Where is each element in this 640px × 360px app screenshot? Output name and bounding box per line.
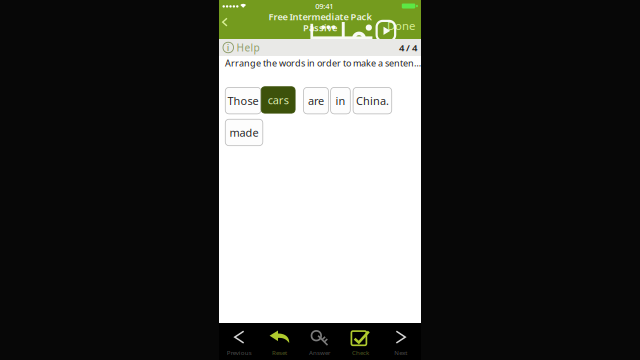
staticText: made [230, 125, 259, 140]
button[interactable]: in [331, 87, 350, 114]
staticText: Check [352, 349, 369, 357]
button[interactable]: are [303, 87, 328, 114]
staticText: Reset [272, 349, 287, 357]
button[interactable]: cars [261, 87, 295, 113]
staticText: are [308, 93, 324, 108]
staticText: cars [268, 93, 289, 107]
button[interactable]: Check [340, 323, 381, 360]
staticText: 4 / 4 [399, 41, 417, 54]
staticText: i [227, 41, 230, 54]
button[interactable]: China. [353, 87, 392, 114]
staticText: Previous [227, 349, 252, 357]
staticText: Arrange the words in order to make a sen… [225, 57, 421, 69]
button[interactable]: i [223, 39, 259, 56]
staticText: Free Intermediate Pack [268, 10, 371, 23]
button[interactable]: Reset [259, 323, 300, 360]
staticText: in [335, 93, 345, 108]
button[interactable]: Answer [300, 323, 340, 360]
button[interactable]: Next [381, 323, 421, 360]
staticText: Answer [309, 349, 331, 357]
staticText: China. [356, 93, 389, 108]
staticText: Next [394, 349, 407, 357]
button[interactable]: made [225, 119, 263, 146]
button[interactable]: Previous [219, 323, 259, 360]
staticText: Help [236, 41, 259, 54]
staticText: Those [228, 93, 259, 108]
button[interactable]: Those [225, 87, 261, 114]
staticText: Done [387, 18, 415, 33]
staticText: Passive [303, 21, 337, 34]
button[interactable]: Back [222, 12, 242, 39]
staticText: 09:41 [315, 1, 333, 11]
button[interactable]: Done [384, 12, 418, 39]
